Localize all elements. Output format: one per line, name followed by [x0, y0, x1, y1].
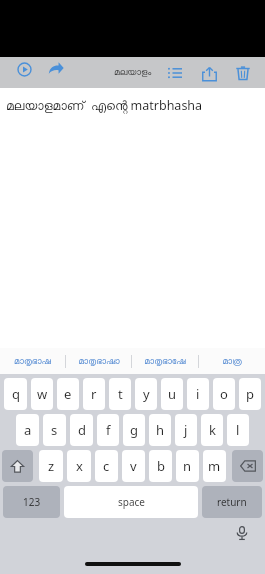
- staticText: t: [118, 385, 123, 403]
- button[interactable]: q: [4, 378, 27, 410]
- staticText: മാതൃഭാഷ: [14, 357, 51, 366]
- button[interactable]: a: [16, 414, 39, 446]
- button[interactable]: s: [43, 414, 66, 446]
- button[interactable]: d: [70, 414, 93, 446]
- button[interactable]: Share: [197, 61, 221, 85]
- button[interactable]: g: [123, 414, 145, 446]
- button[interactable]: b: [149, 450, 172, 482]
- staticText: c: [103, 457, 110, 475]
- button[interactable]: മാതൃഭാഷ: [0, 348, 65, 374]
- button[interactable]: Shift: [2, 450, 33, 482]
- button[interactable]: u: [161, 378, 183, 410]
- staticText: space: [118, 495, 145, 509]
- staticText: p: [246, 385, 254, 403]
- button[interactable]: i: [187, 378, 209, 410]
- staticText: e: [64, 385, 72, 403]
- button[interactable]: c: [95, 450, 118, 482]
- button[interactable]: e: [57, 378, 79, 410]
- staticText: m: [208, 457, 221, 475]
- button[interactable]: m: [203, 450, 226, 482]
- staticText: y: [143, 385, 150, 403]
- button[interactable]: മാത്ര: [199, 348, 265, 374]
- button[interactable]: k: [201, 414, 223, 446]
- button[interactable]: h: [149, 414, 171, 446]
- staticText: x: [76, 457, 83, 475]
- button[interactable]: മാതൃഭാഷേ: [132, 348, 198, 374]
- button[interactable]: y: [135, 378, 157, 410]
- button[interactable]: o: [213, 378, 235, 410]
- staticText: w: [37, 385, 48, 403]
- staticText: i: [196, 385, 200, 403]
- button[interactable]: j: [175, 414, 197, 446]
- button[interactable]: v: [122, 450, 145, 482]
- staticText: d: [78, 421, 86, 439]
- button[interactable]: f: [97, 414, 119, 446]
- staticText: k: [209, 421, 216, 439]
- staticText: u: [168, 385, 177, 403]
- button[interactable]: Backspace: [232, 450, 263, 482]
- button[interactable]: Forward: [44, 57, 68, 81]
- staticText: r: [91, 385, 97, 403]
- button[interactable]: 123: [3, 486, 60, 518]
- button[interactable]: Delete: [231, 61, 255, 85]
- staticText: l: [236, 421, 240, 439]
- staticText: മാത്ര: [222, 357, 242, 366]
- staticText: v: [130, 457, 137, 475]
- staticText: മലയാളമാണ് എന്റെ matrbhasha: [6, 97, 203, 114]
- staticText: return: [217, 495, 247, 509]
- staticText: 123: [23, 495, 41, 509]
- staticText: z: [48, 457, 55, 475]
- staticText: g: [130, 421, 138, 439]
- button[interactable]: return: [202, 486, 262, 518]
- button[interactable]: l: [227, 414, 249, 446]
- staticText: s: [51, 421, 58, 439]
- button[interactable]: n: [176, 450, 199, 482]
- button[interactable]: List: [163, 61, 187, 85]
- staticText: n: [183, 457, 192, 475]
- staticText: a: [24, 421, 32, 439]
- button[interactable]: p: [239, 378, 261, 410]
- staticText: b: [157, 457, 165, 475]
- staticText: മലയാളം: [114, 68, 152, 77]
- staticText: f: [106, 421, 111, 439]
- staticText: j: [184, 421, 188, 439]
- button[interactable]: t: [109, 378, 131, 410]
- staticText: q: [12, 385, 20, 403]
- staticText: o: [220, 385, 228, 403]
- button[interactable]: r: [83, 378, 105, 410]
- button[interactable]: Dictate: [231, 522, 253, 544]
- staticText: h: [156, 421, 165, 439]
- button[interactable]: Speak: [12, 57, 36, 81]
- button[interactable]: space: [64, 486, 198, 518]
- staticText: മാതൃഭാഷാ: [78, 357, 120, 366]
- button[interactable]: x: [67, 450, 91, 482]
- staticText: മാതൃഭാഷേ: [144, 357, 186, 366]
- button[interactable]: w: [31, 378, 53, 410]
- button[interactable]: മാതൃഭാഷാ: [66, 348, 131, 374]
- button[interactable]: z: [39, 450, 63, 482]
